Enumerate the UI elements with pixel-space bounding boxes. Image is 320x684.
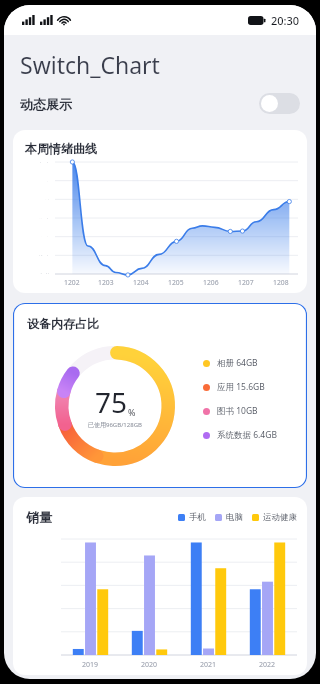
staticText: 2021 (200, 660, 217, 670)
button[interactable]: 销量 (13, 497, 307, 675)
staticText: 痛苦 (38, 273, 51, 274)
staticText: 设备内存占比 (27, 316, 99, 331)
staticText: 2022 (259, 660, 276, 670)
staticText: 1205 (168, 278, 184, 287)
staticText: 1203 (98, 278, 114, 287)
button[interactable]: 动态展示 开关 (259, 93, 300, 114)
staticText: 平静 (38, 199, 51, 200)
staticText: 75 (95, 383, 128, 421)
staticText: 1208 (273, 278, 289, 287)
staticText: 20:30 (271, 13, 300, 28)
staticText: 兴奋 (38, 162, 51, 163)
staticText: 1207 (238, 278, 254, 287)
staticText: 系统数据 6.4GB (217, 429, 277, 441)
button[interactable]: 设备内存占比 (13, 303, 307, 488)
staticText: 电脑 (226, 512, 243, 523)
staticText: 1204 (133, 278, 149, 287)
staticText: 应用 15.6GB (217, 381, 265, 393)
staticText: 2020 (141, 660, 158, 670)
button[interactable]: 本周情绪曲线 (13, 130, 307, 293)
staticText: 1206 (203, 278, 219, 287)
staticText: 本周情绪曲线 (25, 141, 97, 156)
staticText: 2019 (82, 660, 99, 670)
staticText: 焦虑 (38, 218, 51, 219)
staticText: 运动健康 (263, 512, 297, 523)
staticText: 相册 64GB (217, 357, 258, 369)
staticText: 1202 (64, 278, 80, 287)
staticText: 销量 (26, 509, 52, 525)
staticText: Switch_Chart (20, 49, 160, 80)
staticText: 手机 (189, 512, 206, 523)
staticText: 忧虑 (38, 255, 51, 256)
staticText: 图书 10GB (217, 405, 258, 417)
staticText: % (128, 406, 136, 418)
staticText: 已使用96GB/128GB (88, 421, 142, 429)
staticText: 动态展示 (20, 96, 72, 112)
